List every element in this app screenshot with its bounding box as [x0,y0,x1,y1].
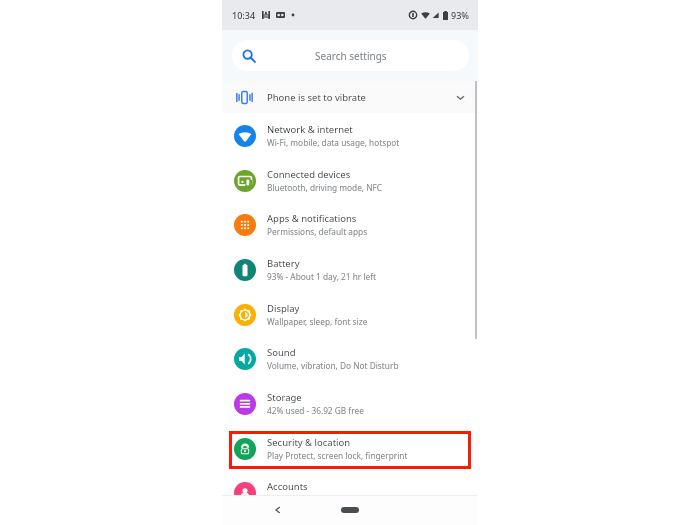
button[interactable]: Connected devices [222,158,478,203]
staticText: Display [267,302,300,315]
button[interactable]: Accounts [222,470,478,515]
button[interactable]: Storage [222,381,478,426]
staticText: Permissions, default apps [267,226,368,237]
button[interactable]: Search settings [232,40,469,71]
staticText: Accounts [267,480,308,493]
staticText: 93% - About 1 day, 21 hr left [267,271,377,282]
button[interactable]: Battery [222,247,478,292]
staticText: Play Protect, screen lock, fingerprint [267,450,408,461]
staticText: Security & location [267,436,351,449]
staticText: Battery [267,257,300,270]
staticText: Volume, vibration, Do Not Disturb [267,360,399,371]
staticText: Storage [267,391,302,404]
staticText: Sound [267,346,296,359]
button[interactable]: Display [222,292,478,337]
staticText: 93% [451,9,469,21]
staticText: Bluetooth, driving mode, NFC [267,182,383,193]
staticText: Connected devices [267,168,351,181]
staticText: Network & internet [267,123,353,136]
staticText: 10:34 [232,9,256,21]
staticText: Phone is set to vibrate [267,91,366,104]
button[interactable]: Home [341,507,359,513]
staticText: Wallpaper, sleep, font size [267,316,368,327]
button[interactable]: Phone is set to vibrate [222,81,478,114]
button[interactable]: Network & internet [222,113,478,158]
staticText: Google [267,494,296,505]
staticText: Search settings [315,49,387,63]
button[interactable]: Security & location [222,426,478,471]
button[interactable]: Apps & notifications [222,202,478,247]
staticText: Wi-Fi, mobile, data usage, hotspot [267,137,400,148]
button[interactable]: Back [266,498,290,522]
button[interactable]: Sound [222,336,478,381]
staticText: 42% used - 36.92 GB free [267,405,364,416]
staticText: Apps & notifications [267,212,357,225]
